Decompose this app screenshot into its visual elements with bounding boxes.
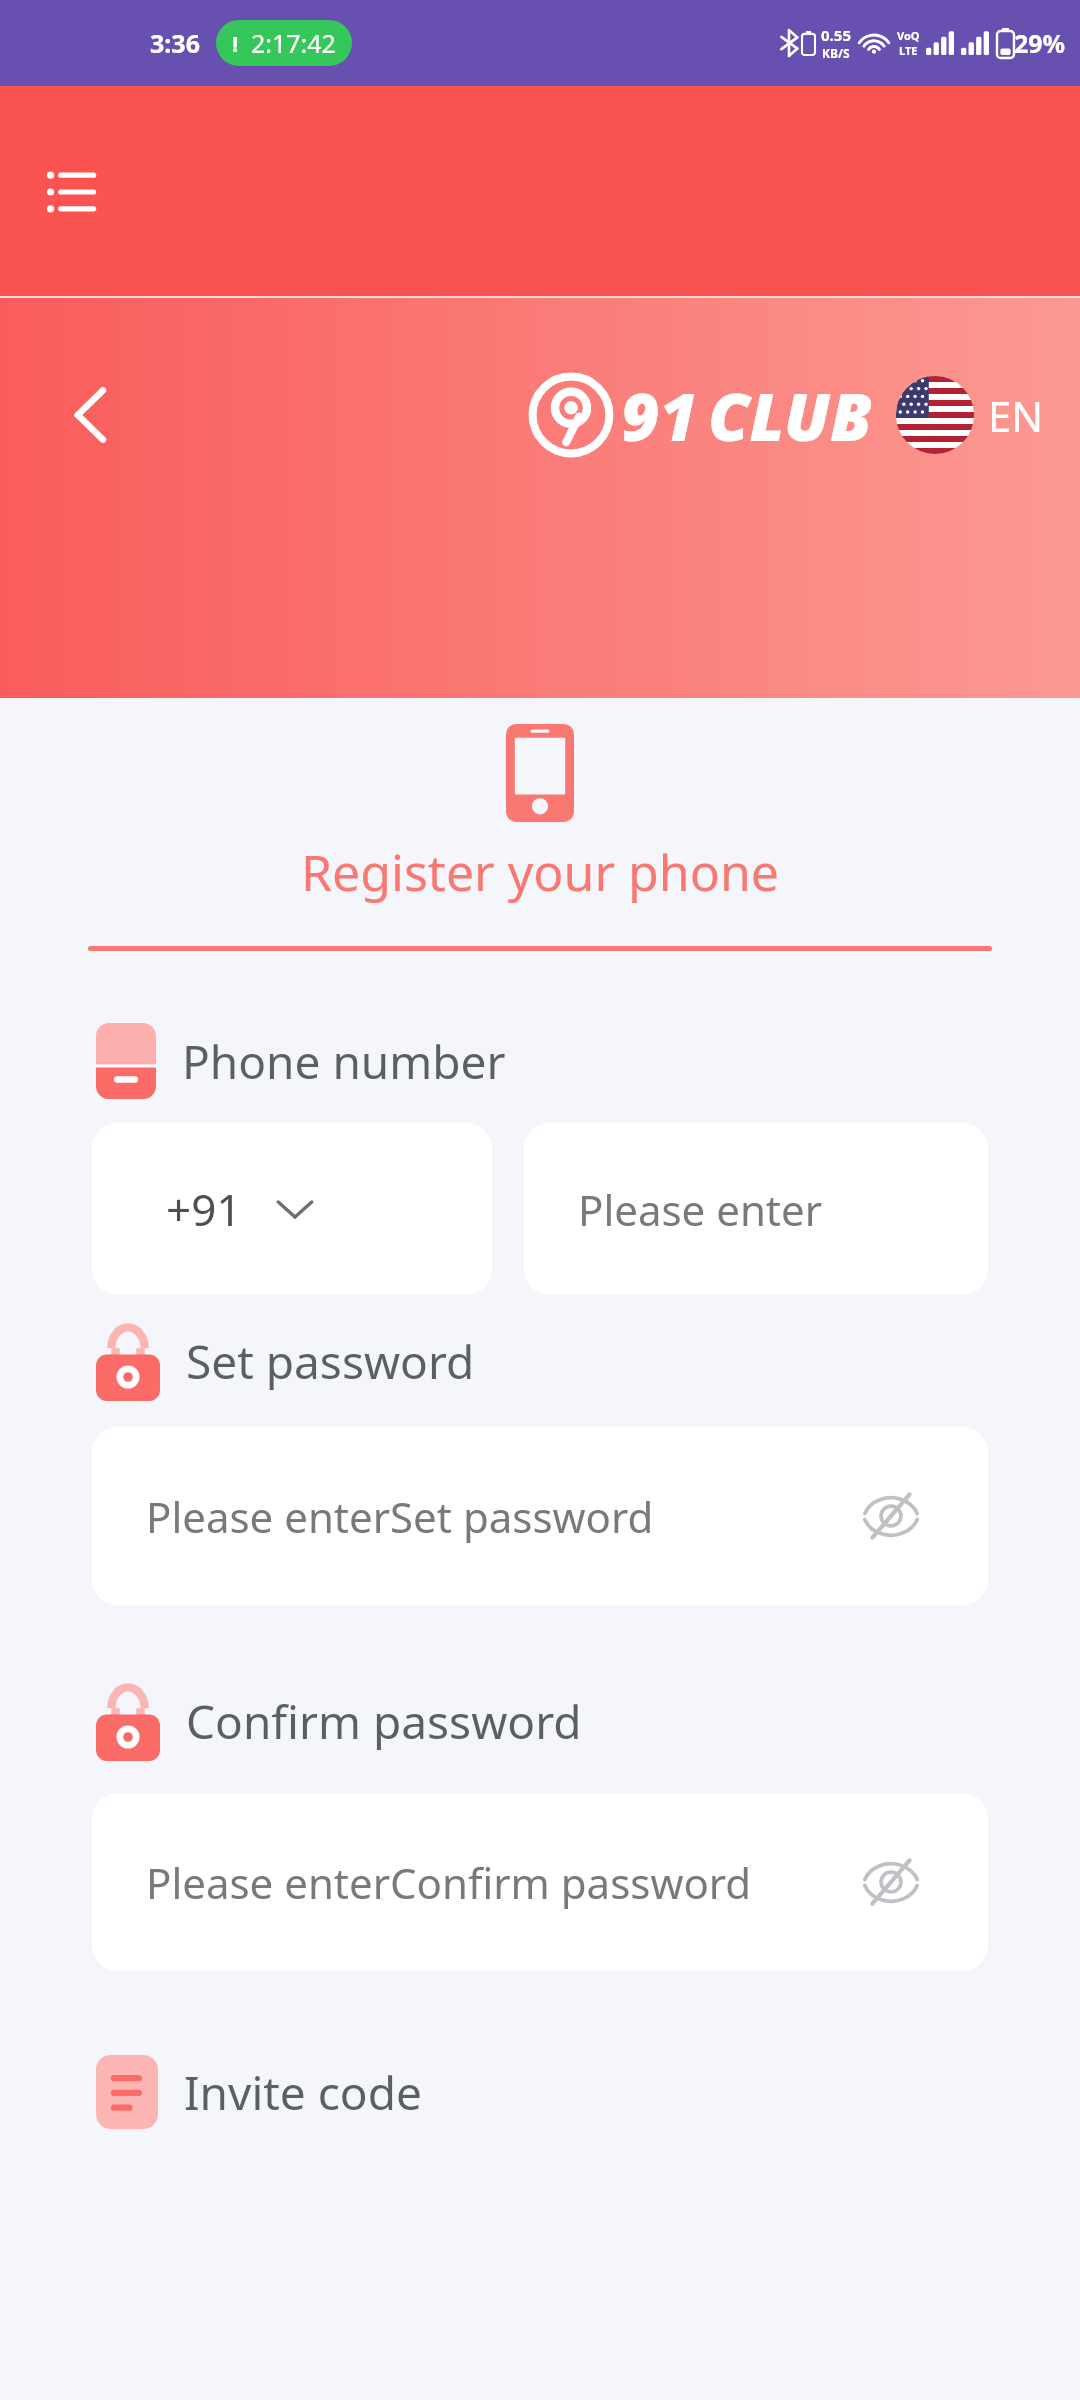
staticText: 91 (621, 370, 698, 460)
staticText: Please enter (578, 1181, 833, 1238)
button[interactable]: Please enterConfirm password (92, 1793, 988, 1971)
button[interactable]: Please enterSet password (92, 1427, 988, 1605)
staticText: 2:17:42 (251, 26, 336, 60)
staticText: ! (232, 28, 239, 58)
button[interactable]: Please enter (524, 1123, 988, 1295)
button[interactable]: Show password (854, 1845, 928, 1919)
staticText: 3:36 (150, 26, 200, 60)
staticText: Phone number (182, 1030, 506, 1093)
staticText: KB/S (822, 45, 850, 61)
staticText: Confirm password (186, 1690, 582, 1753)
staticText: Please enterSet password (146, 1488, 654, 1545)
staticText: Invite code (184, 2061, 422, 2124)
staticText: Register your phone (0, 838, 1080, 906)
button[interactable]: Menu (38, 155, 112, 229)
staticText: VoQ (897, 28, 920, 43)
staticText: LTE (899, 43, 918, 58)
staticText: 29% (1014, 26, 1066, 60)
button[interactable]: EN (988, 387, 1044, 444)
staticText: Please enterConfirm password (146, 1854, 752, 1911)
staticText: EN (988, 387, 1044, 444)
button[interactable]: Show password (854, 1479, 928, 1553)
staticText: 0.55 (821, 25, 851, 45)
staticText: Set password (186, 1330, 475, 1393)
staticText: +91 (166, 1179, 242, 1239)
button[interactable]: Back (52, 377, 128, 453)
staticText: CLUB (708, 370, 872, 460)
button[interactable]: +91 (92, 1123, 492, 1295)
